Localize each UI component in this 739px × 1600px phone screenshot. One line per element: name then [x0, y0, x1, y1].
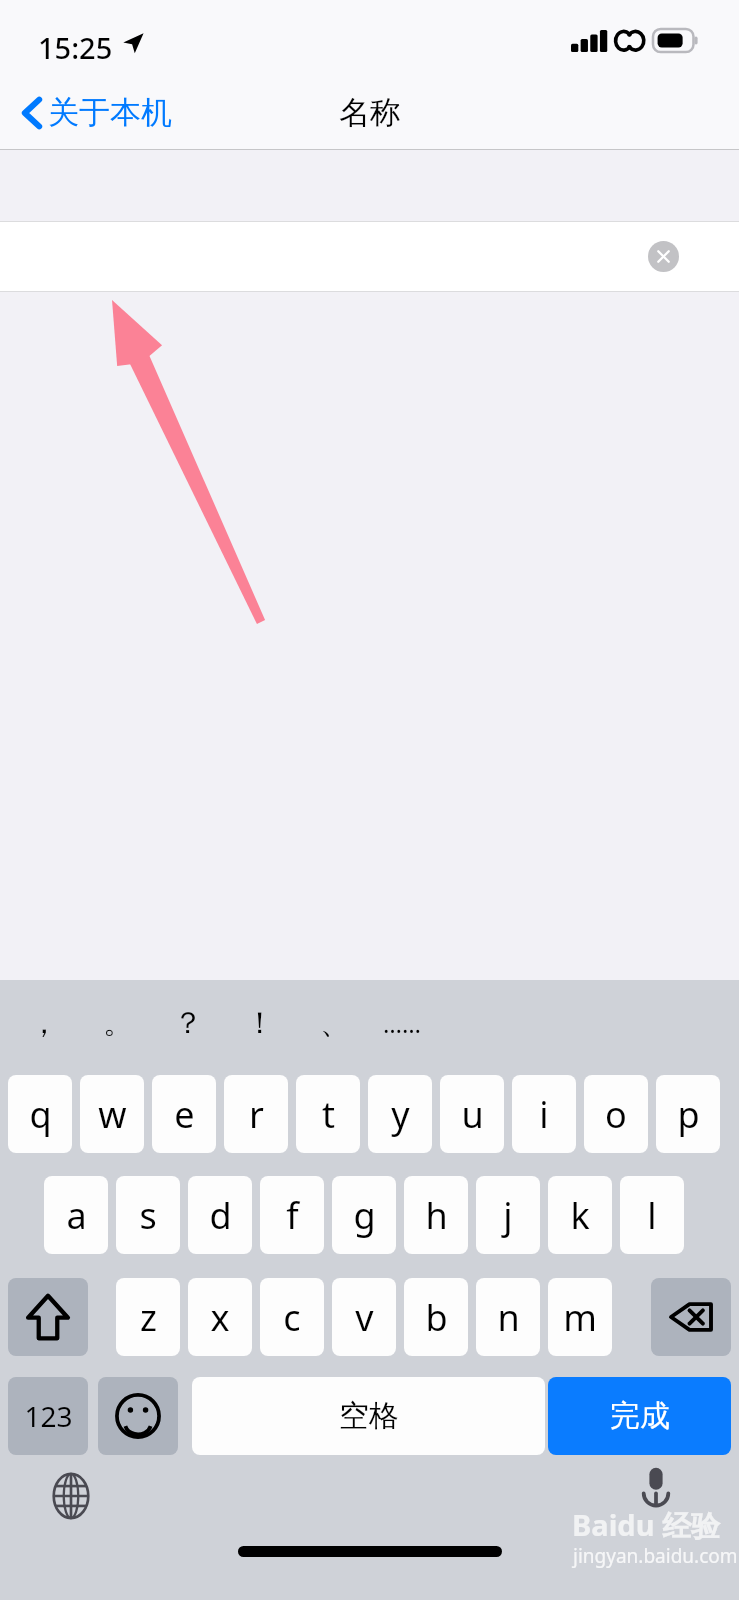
staticText: 。 — [103, 1004, 133, 1042]
button[interactable]: 、 — [305, 990, 365, 1056]
button[interactable]: h — [404, 1176, 468, 1254]
button[interactable]: g — [332, 1176, 396, 1254]
button[interactable]: q — [8, 1075, 72, 1153]
staticText: ！ — [245, 1004, 275, 1042]
button[interactable]: e — [152, 1075, 216, 1153]
staticText: 空格 — [339, 1397, 399, 1435]
staticText: l — [647, 1191, 657, 1240]
button[interactable]: x — [188, 1278, 252, 1356]
button[interactable]: d — [188, 1176, 252, 1254]
button[interactable]: 删除 — [651, 1278, 731, 1356]
staticText: Baidu 经验 — [572, 1505, 721, 1545]
staticText: w — [98, 1090, 127, 1139]
button[interactable]: ！ — [230, 990, 290, 1056]
button[interactable]: j — [476, 1176, 540, 1254]
button[interactable]: Shift — [8, 1278, 88, 1356]
button[interactable]: z — [116, 1278, 180, 1356]
button[interactable]: 表情 — [98, 1377, 178, 1455]
staticText: 完成 — [610, 1397, 670, 1435]
staticText: jingyan.baidu.com — [573, 1543, 738, 1569]
staticText: t — [322, 1090, 335, 1139]
button[interactable]: 语音输入 — [626, 1458, 686, 1518]
staticText: q — [29, 1090, 52, 1139]
button[interactable]: k — [548, 1176, 612, 1254]
staticText: …… — [383, 1007, 421, 1040]
button[interactable]: u — [440, 1075, 504, 1153]
button[interactable]: 完成 — [548, 1377, 731, 1455]
staticText: k — [570, 1191, 590, 1240]
button[interactable]: s — [116, 1176, 180, 1254]
button[interactable]: r — [224, 1075, 288, 1153]
button[interactable]: l — [620, 1176, 684, 1254]
staticText: j — [503, 1191, 513, 1240]
button[interactable]: 。 — [88, 990, 148, 1056]
button[interactable]: 清除 — [0, 221, 739, 292]
staticText: c — [283, 1293, 301, 1342]
staticText: y — [391, 1090, 410, 1139]
staticText: h — [425, 1191, 448, 1240]
button[interactable]: p — [656, 1075, 720, 1153]
button[interactable]: m — [548, 1278, 612, 1356]
button[interactable]: n — [476, 1278, 540, 1356]
button[interactable]: c — [260, 1278, 324, 1356]
staticText: x — [210, 1293, 230, 1342]
button[interactable]: 空格 — [192, 1377, 545, 1455]
staticText: g — [353, 1191, 376, 1240]
staticText: n — [497, 1293, 520, 1342]
staticText: 关于本机 — [48, 93, 172, 132]
button[interactable]: 关于本机 — [14, 75, 180, 150]
staticText: d — [209, 1191, 232, 1240]
staticText: 名称 — [339, 93, 401, 132]
staticText: f — [286, 1191, 299, 1240]
staticText: u — [461, 1090, 484, 1139]
staticText: e — [174, 1090, 195, 1139]
button[interactable]: 清除 — [648, 241, 679, 272]
staticText: s — [139, 1191, 157, 1240]
staticText: o — [605, 1090, 627, 1139]
button[interactable]: b — [404, 1278, 468, 1356]
button[interactable]: w — [80, 1075, 144, 1153]
button[interactable]: t — [296, 1075, 360, 1153]
staticText: i — [539, 1090, 549, 1139]
button[interactable]: 123 — [8, 1377, 88, 1455]
button[interactable]: f — [260, 1176, 324, 1254]
staticText: v — [355, 1293, 374, 1342]
staticText: ？ — [173, 1004, 203, 1042]
button[interactable]: i — [512, 1075, 576, 1153]
staticText: b — [425, 1293, 448, 1342]
staticText: p — [677, 1090, 700, 1139]
staticText: z — [140, 1293, 157, 1342]
staticText: 123 — [24, 1397, 73, 1435]
staticText: ， — [29, 1004, 59, 1042]
button[interactable]: y — [368, 1075, 432, 1153]
staticText: 、 — [320, 1004, 350, 1042]
button[interactable]: ， — [14, 990, 74, 1056]
button[interactable]: …… — [372, 990, 432, 1056]
button[interactable]: 切换键盘 — [40, 1465, 102, 1527]
staticText: r — [249, 1090, 264, 1139]
button[interactable]: ？ — [158, 990, 218, 1056]
staticText: a — [66, 1191, 87, 1240]
staticText: 15:25 — [38, 28, 113, 67]
button[interactable]: a — [44, 1176, 108, 1254]
button[interactable]: v — [332, 1278, 396, 1356]
staticText: m — [563, 1293, 597, 1342]
button[interactable]: o — [584, 1075, 648, 1153]
